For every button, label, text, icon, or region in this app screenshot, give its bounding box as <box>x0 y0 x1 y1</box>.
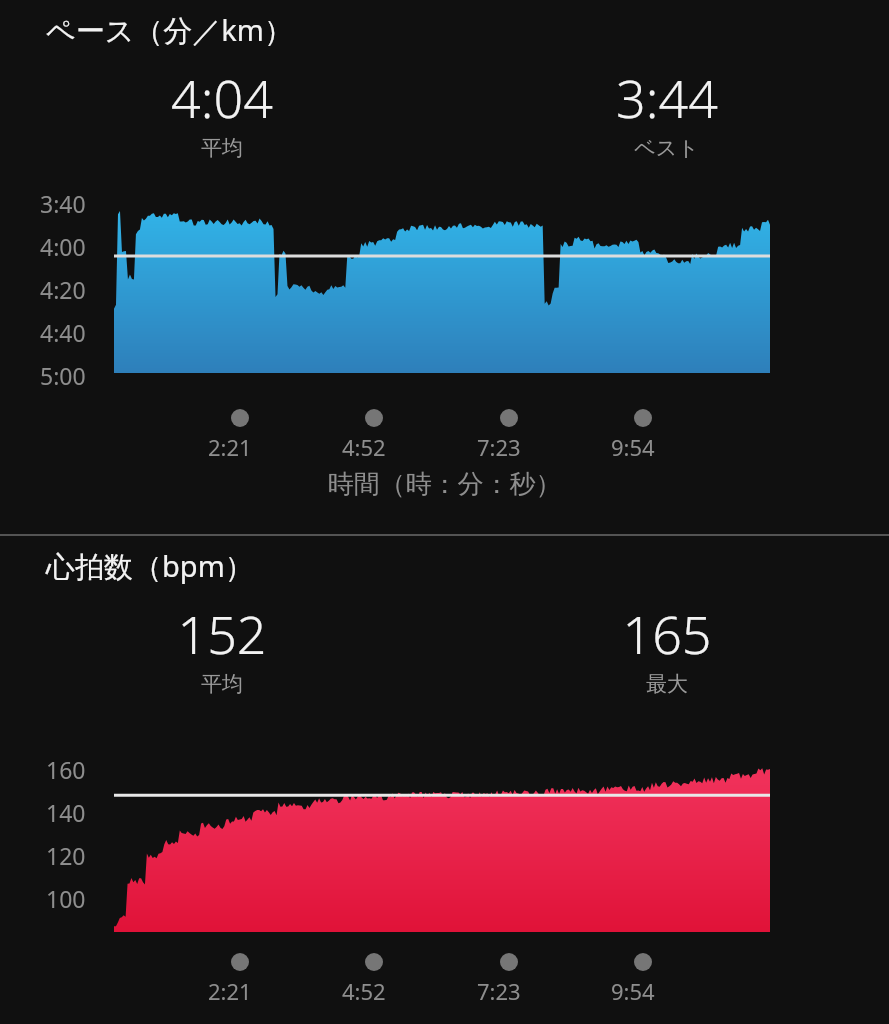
button[interactable]: 165 <box>444 598 889 697</box>
staticText: 152 <box>177 598 267 669</box>
staticText: 9:54 <box>611 432 655 462</box>
staticText: 平均 <box>201 671 243 697</box>
staticText: 165 <box>622 598 712 669</box>
staticText: ペース（分／km） <box>46 10 293 50</box>
staticText: 2:21 <box>208 432 252 462</box>
staticText: 4:20 <box>40 274 86 305</box>
staticText: 時間（時：分：秒） <box>0 468 889 501</box>
staticText: 100 <box>46 883 86 914</box>
staticText: 5:00 <box>40 360 86 391</box>
staticText: 心拍数（bpm） <box>46 546 254 586</box>
staticText: ベスト <box>634 135 699 161</box>
staticText: 160 <box>46 754 86 785</box>
staticText: 3:40 <box>40 188 86 219</box>
button[interactable]: 心拍数（bpm） <box>0 536 889 1024</box>
staticText: 4:52 <box>342 976 386 1006</box>
staticText: 4:40 <box>40 317 86 348</box>
staticText: 4:52 <box>342 432 386 462</box>
staticText: 7:23 <box>477 976 521 1006</box>
staticText: 7:23 <box>477 432 521 462</box>
button[interactable]: 152 <box>0 598 444 697</box>
staticText: 2:21 <box>208 976 252 1006</box>
staticText: 4:00 <box>40 231 86 262</box>
staticText: 3:44 <box>616 62 718 133</box>
button[interactable]: 4:04 <box>0 62 444 161</box>
staticText: 120 <box>46 840 86 871</box>
button[interactable]: 3:44 <box>444 62 889 161</box>
button[interactable]: ペース（分／km） <box>0 0 889 534</box>
staticText: 9:54 <box>611 976 655 1006</box>
staticText: 140 <box>46 797 86 828</box>
staticText: 最大 <box>646 671 688 697</box>
staticText: 4:04 <box>171 62 273 133</box>
staticText: 平均 <box>201 135 243 161</box>
